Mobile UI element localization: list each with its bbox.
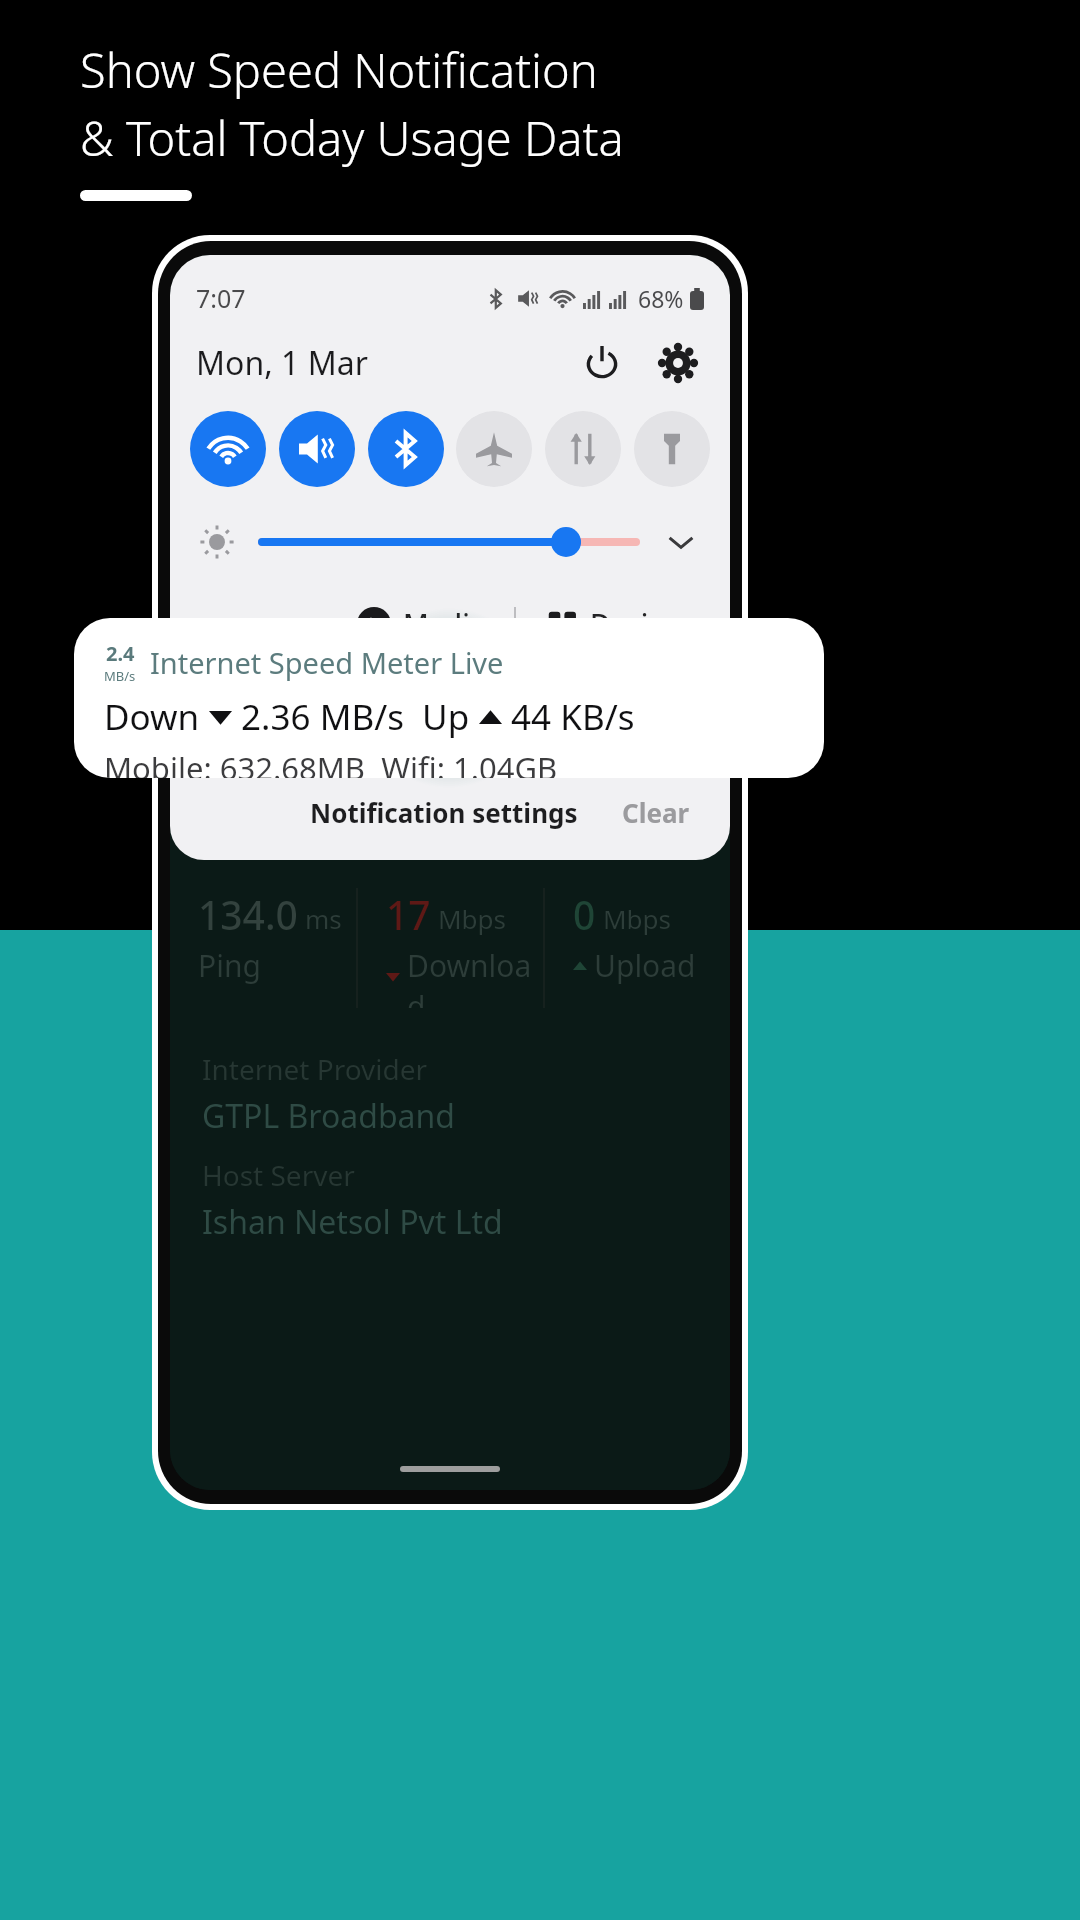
button[interactable]: Expand	[658, 519, 704, 565]
staticText: Upload	[594, 945, 696, 986]
button[interactable]: Sound off	[279, 411, 355, 487]
staticText: Devices	[590, 605, 692, 643]
button[interactable]: Flashlight	[634, 411, 710, 487]
staticText: Host Server	[202, 1156, 355, 1194]
staticText: ms	[305, 901, 342, 936]
staticText: Media	[403, 605, 486, 643]
staticText: Download	[407, 945, 543, 1008]
staticText: MB/s	[104, 667, 136, 685]
button[interactable]: Mobile data	[545, 411, 621, 487]
button[interactable]: Wi-Fi	[190, 411, 266, 487]
button[interactable]: Airplane mode	[456, 411, 532, 487]
button[interactable]: Power	[576, 337, 628, 389]
staticText: Internet Provider	[202, 1050, 428, 1088]
button[interactable]: Settings	[652, 337, 704, 389]
staticText: Notification settings	[310, 795, 578, 830]
button[interactable]: Media	[349, 599, 494, 649]
staticText: Down	[104, 693, 209, 741]
button[interactable]: 2.4	[74, 618, 824, 778]
staticText: 0	[573, 888, 596, 941]
staticText: 2.36 MB/s Up	[232, 693, 479, 741]
staticText: Mobile: 632.68MB Wifi: 1.04GB	[104, 747, 558, 778]
staticText: Ping	[198, 945, 261, 986]
staticText: 17	[386, 888, 431, 941]
button[interactable]: Clear	[616, 789, 696, 836]
staticText: Mbps	[438, 901, 507, 936]
staticText: Mbps	[603, 901, 672, 936]
staticText: 68%	[638, 283, 684, 314]
staticText: GTPL Broadband	[202, 1094, 455, 1138]
staticText: Clear	[622, 795, 690, 830]
staticText: Show Speed Notification	[80, 38, 598, 102]
staticText: & Total Today Usage Data	[80, 106, 624, 170]
staticText: 7:07	[196, 281, 246, 315]
staticText: Internet Speed Meter Live	[150, 643, 504, 682]
staticText: Mon, 1 Mar	[196, 341, 368, 385]
button[interactable]: Notification settings	[304, 789, 584, 836]
staticText: 2.4	[106, 640, 135, 667]
button[interactable]: Bluetooth	[368, 411, 444, 487]
staticText: 44 KB/s	[502, 693, 635, 741]
staticText: 134.0	[198, 888, 298, 941]
button[interactable]: Devices	[536, 599, 700, 649]
staticText: Ishan Netsol Pvt Ltd	[202, 1200, 503, 1244]
